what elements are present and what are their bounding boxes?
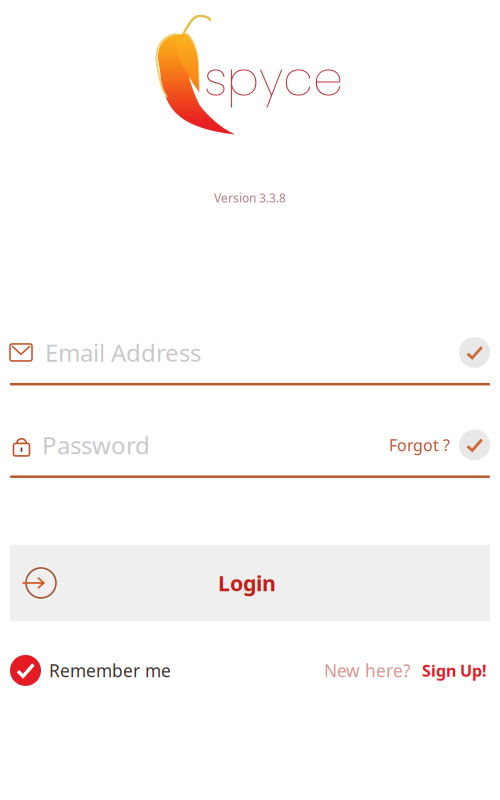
- staticText: New here?: [324, 659, 411, 682]
- button[interactable]: Login: [10, 545, 490, 621]
- button[interactable]: Forgot ?: [389, 434, 459, 455]
- staticText: Password: [42, 429, 150, 461]
- staticText: spyce: [204, 45, 343, 112]
- staticText: Remember me: [49, 659, 171, 682]
- button[interactable]: Remember me: [10, 655, 171, 686]
- staticText: Email Address: [45, 336, 201, 368]
- staticText: Login: [218, 569, 276, 597]
- staticText: Version 3.3.8: [214, 190, 286, 206]
- staticText: Sign Up!: [422, 660, 487, 681]
- button[interactable]: New here?: [324, 659, 490, 682]
- staticText: Forgot ?: [389, 434, 450, 455]
